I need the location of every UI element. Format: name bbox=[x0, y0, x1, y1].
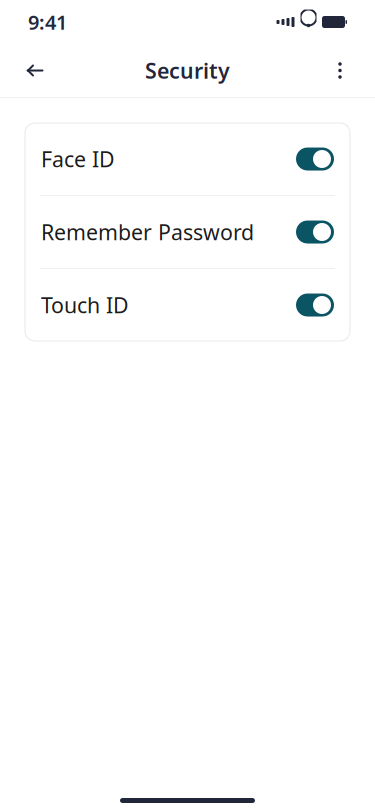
staticText: Security bbox=[145, 56, 230, 85]
button[interactable]: Face ID bbox=[25, 123, 350, 195]
staticText: Face ID bbox=[41, 145, 115, 173]
button[interactable]: More options bbox=[318, 48, 362, 92]
button[interactable]: Remember Password bbox=[25, 196, 350, 268]
staticText: 9:41 bbox=[28, 9, 67, 35]
staticText: Remember Password bbox=[41, 218, 254, 246]
button[interactable]: Touch ID bbox=[25, 269, 350, 341]
staticText: Touch ID bbox=[41, 291, 129, 319]
button[interactable]: Back bbox=[13, 48, 57, 92]
